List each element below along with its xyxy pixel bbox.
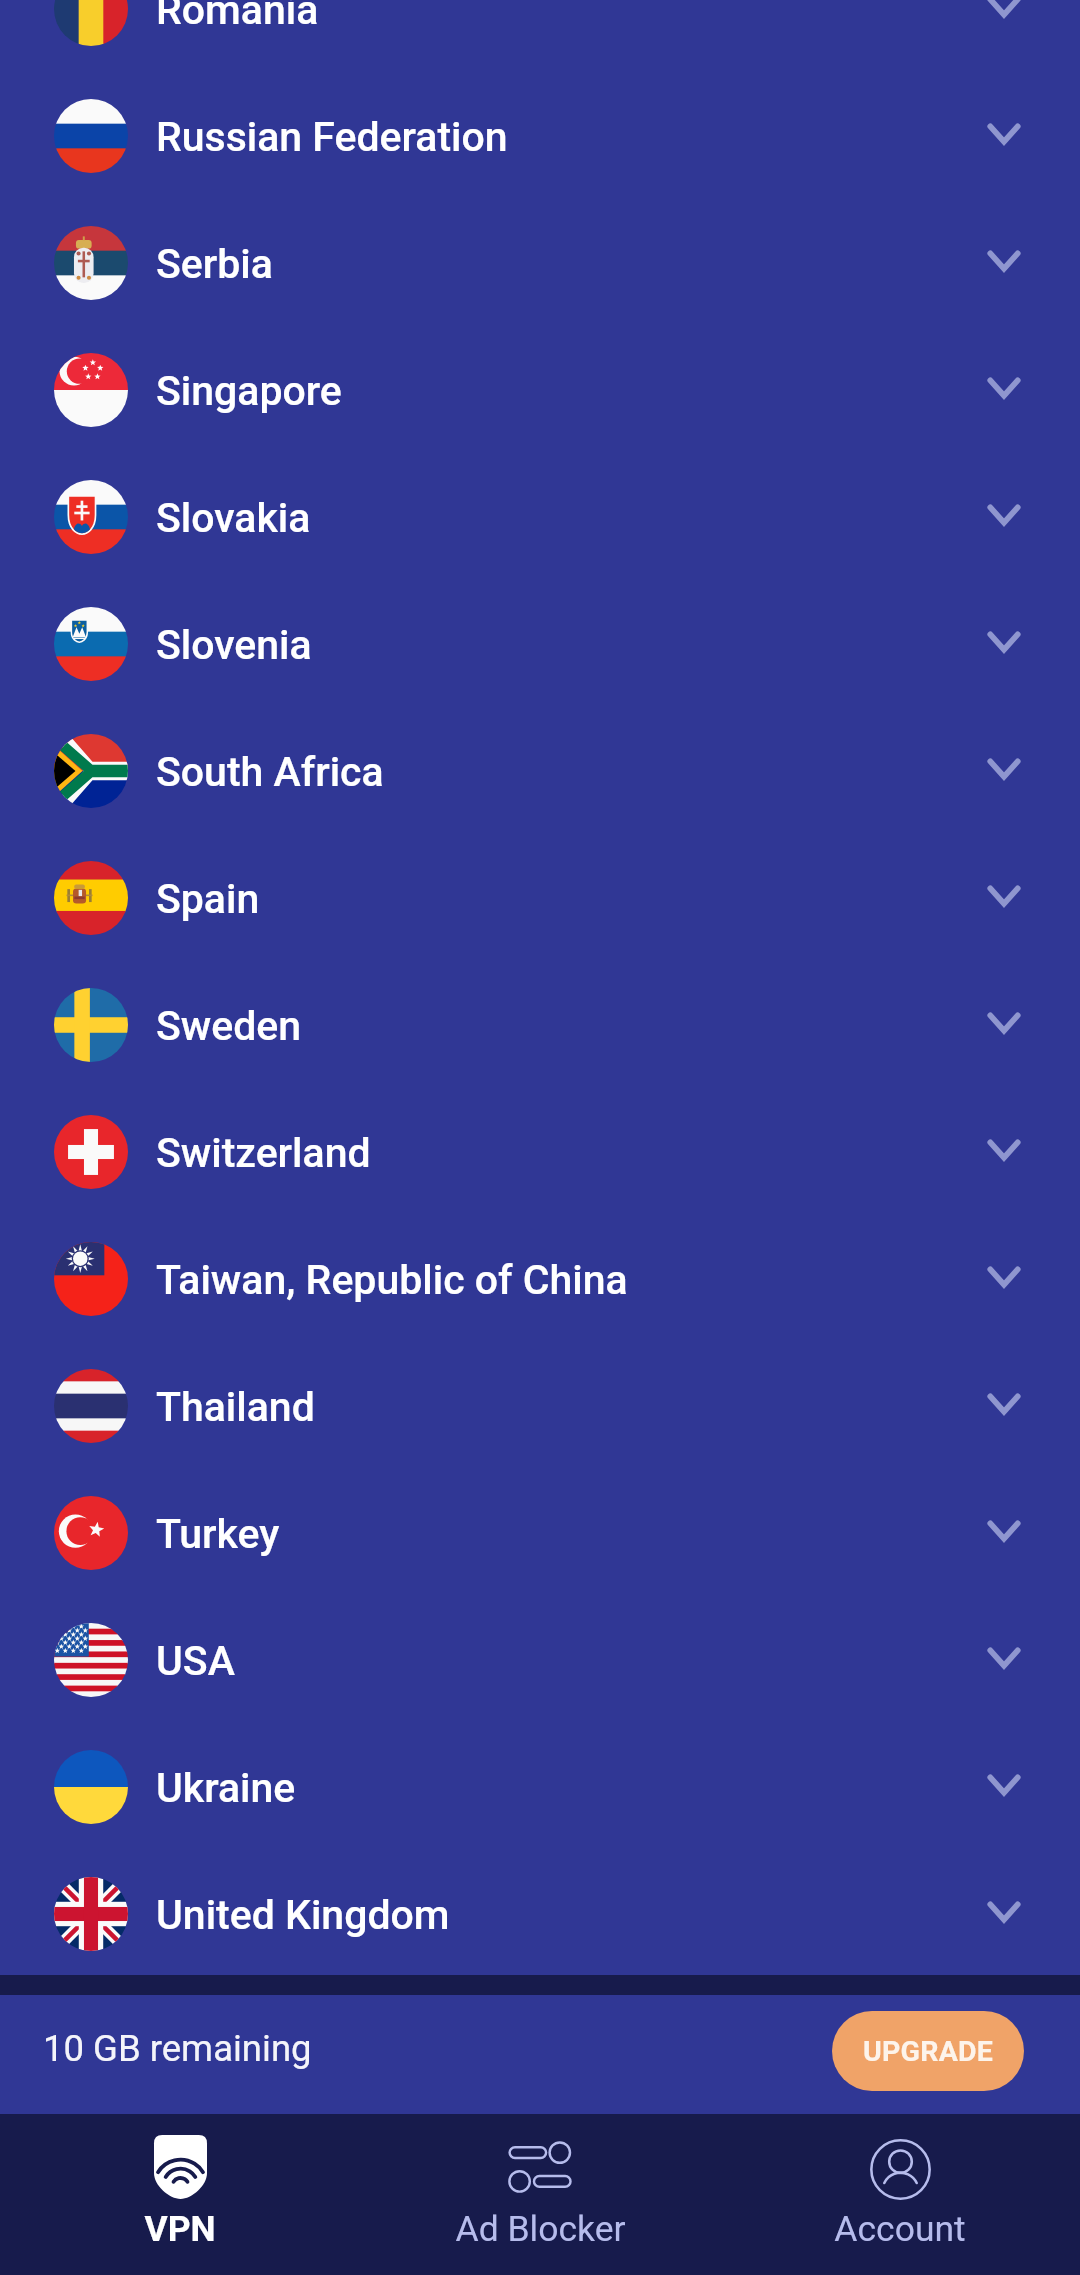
staticText: Taiwan, Republic of China (156, 1256, 628, 1304)
button[interactable]: Expand Slovakia (974, 485, 1034, 545)
button[interactable]: Ad Blocker (360, 2114, 720, 2275)
button[interactable]: Spain (0, 834, 1080, 961)
button[interactable]: Expand Slovenia (974, 612, 1034, 672)
button[interactable]: Singapore (0, 326, 1080, 453)
staticText: Ad Blocker (455, 2208, 626, 2250)
button[interactable]: Expand Russian Federation (974, 104, 1034, 164)
staticText: Romania (156, 0, 319, 34)
button[interactable]: Serbia (0, 199, 1080, 326)
button[interactable]: Russian Federation (0, 72, 1080, 199)
button[interactable]: Expand United Kingdom (974, 1882, 1034, 1942)
button[interactable]: Expand Sweden (974, 993, 1034, 1053)
staticText: Serbia (156, 240, 273, 288)
staticText: Slovakia (156, 494, 311, 542)
button[interactable]: South Africa (0, 707, 1080, 834)
button[interactable]: Romania (0, 0, 1080, 72)
button[interactable]: Switzerland (0, 1088, 1080, 1215)
button[interactable]: Expand Turkey (974, 1501, 1034, 1561)
button[interactable]: UPGRADE (832, 2011, 1024, 2091)
staticText: Russian Federation (156, 113, 508, 161)
staticText: Ukraine (156, 1764, 296, 1812)
staticText: Spain (156, 875, 260, 923)
staticText: Account (834, 2208, 966, 2250)
staticText: Switzerland (156, 1129, 371, 1177)
button[interactable]: Expand Romania (974, 0, 1034, 37)
staticText: 10 GB remaining (43, 2027, 312, 2070)
button[interactable]: Expand USA (974, 1628, 1034, 1688)
button[interactable]: Ukraine (0, 1723, 1080, 1850)
staticText: Turkey (156, 1510, 280, 1558)
staticText: VPN (144, 2208, 216, 2250)
staticText: USA (156, 1637, 235, 1685)
button[interactable]: Expand Ukraine (974, 1755, 1034, 1815)
button[interactable]: Taiwan, Republic of China (0, 1215, 1080, 1342)
button[interactable]: Expand Spain (974, 866, 1034, 926)
staticText: Slovenia (156, 621, 312, 669)
button[interactable]: Turkey (0, 1469, 1080, 1596)
button[interactable]: United Kingdom (0, 1850, 1080, 1975)
button[interactable]: Expand Serbia (974, 231, 1034, 291)
button[interactable]: Account (720, 2114, 1080, 2275)
button[interactable]: Thailand (0, 1342, 1080, 1469)
button[interactable]: Expand Switzerland (974, 1120, 1034, 1180)
button[interactable]: Expand Singapore (974, 358, 1034, 418)
staticText: Thailand (156, 1383, 315, 1431)
staticText: Sweden (156, 1002, 302, 1050)
button[interactable]: Expand Taiwan, Republic of China (974, 1247, 1034, 1307)
button[interactable]: Slovenia (0, 580, 1080, 707)
button[interactable]: USA (0, 1596, 1080, 1723)
button[interactable]: Expand South Africa (974, 739, 1034, 799)
staticText: UPGRADE (863, 2035, 993, 2068)
staticText: South Africa (156, 748, 384, 796)
staticText: Singapore (156, 367, 342, 415)
staticText: United Kingdom (156, 1891, 450, 1939)
button[interactable]: Expand Thailand (974, 1374, 1034, 1434)
button[interactable]: Slovakia (0, 453, 1080, 580)
button[interactable]: Sweden (0, 961, 1080, 1088)
button[interactable]: VPN (0, 2114, 360, 2275)
